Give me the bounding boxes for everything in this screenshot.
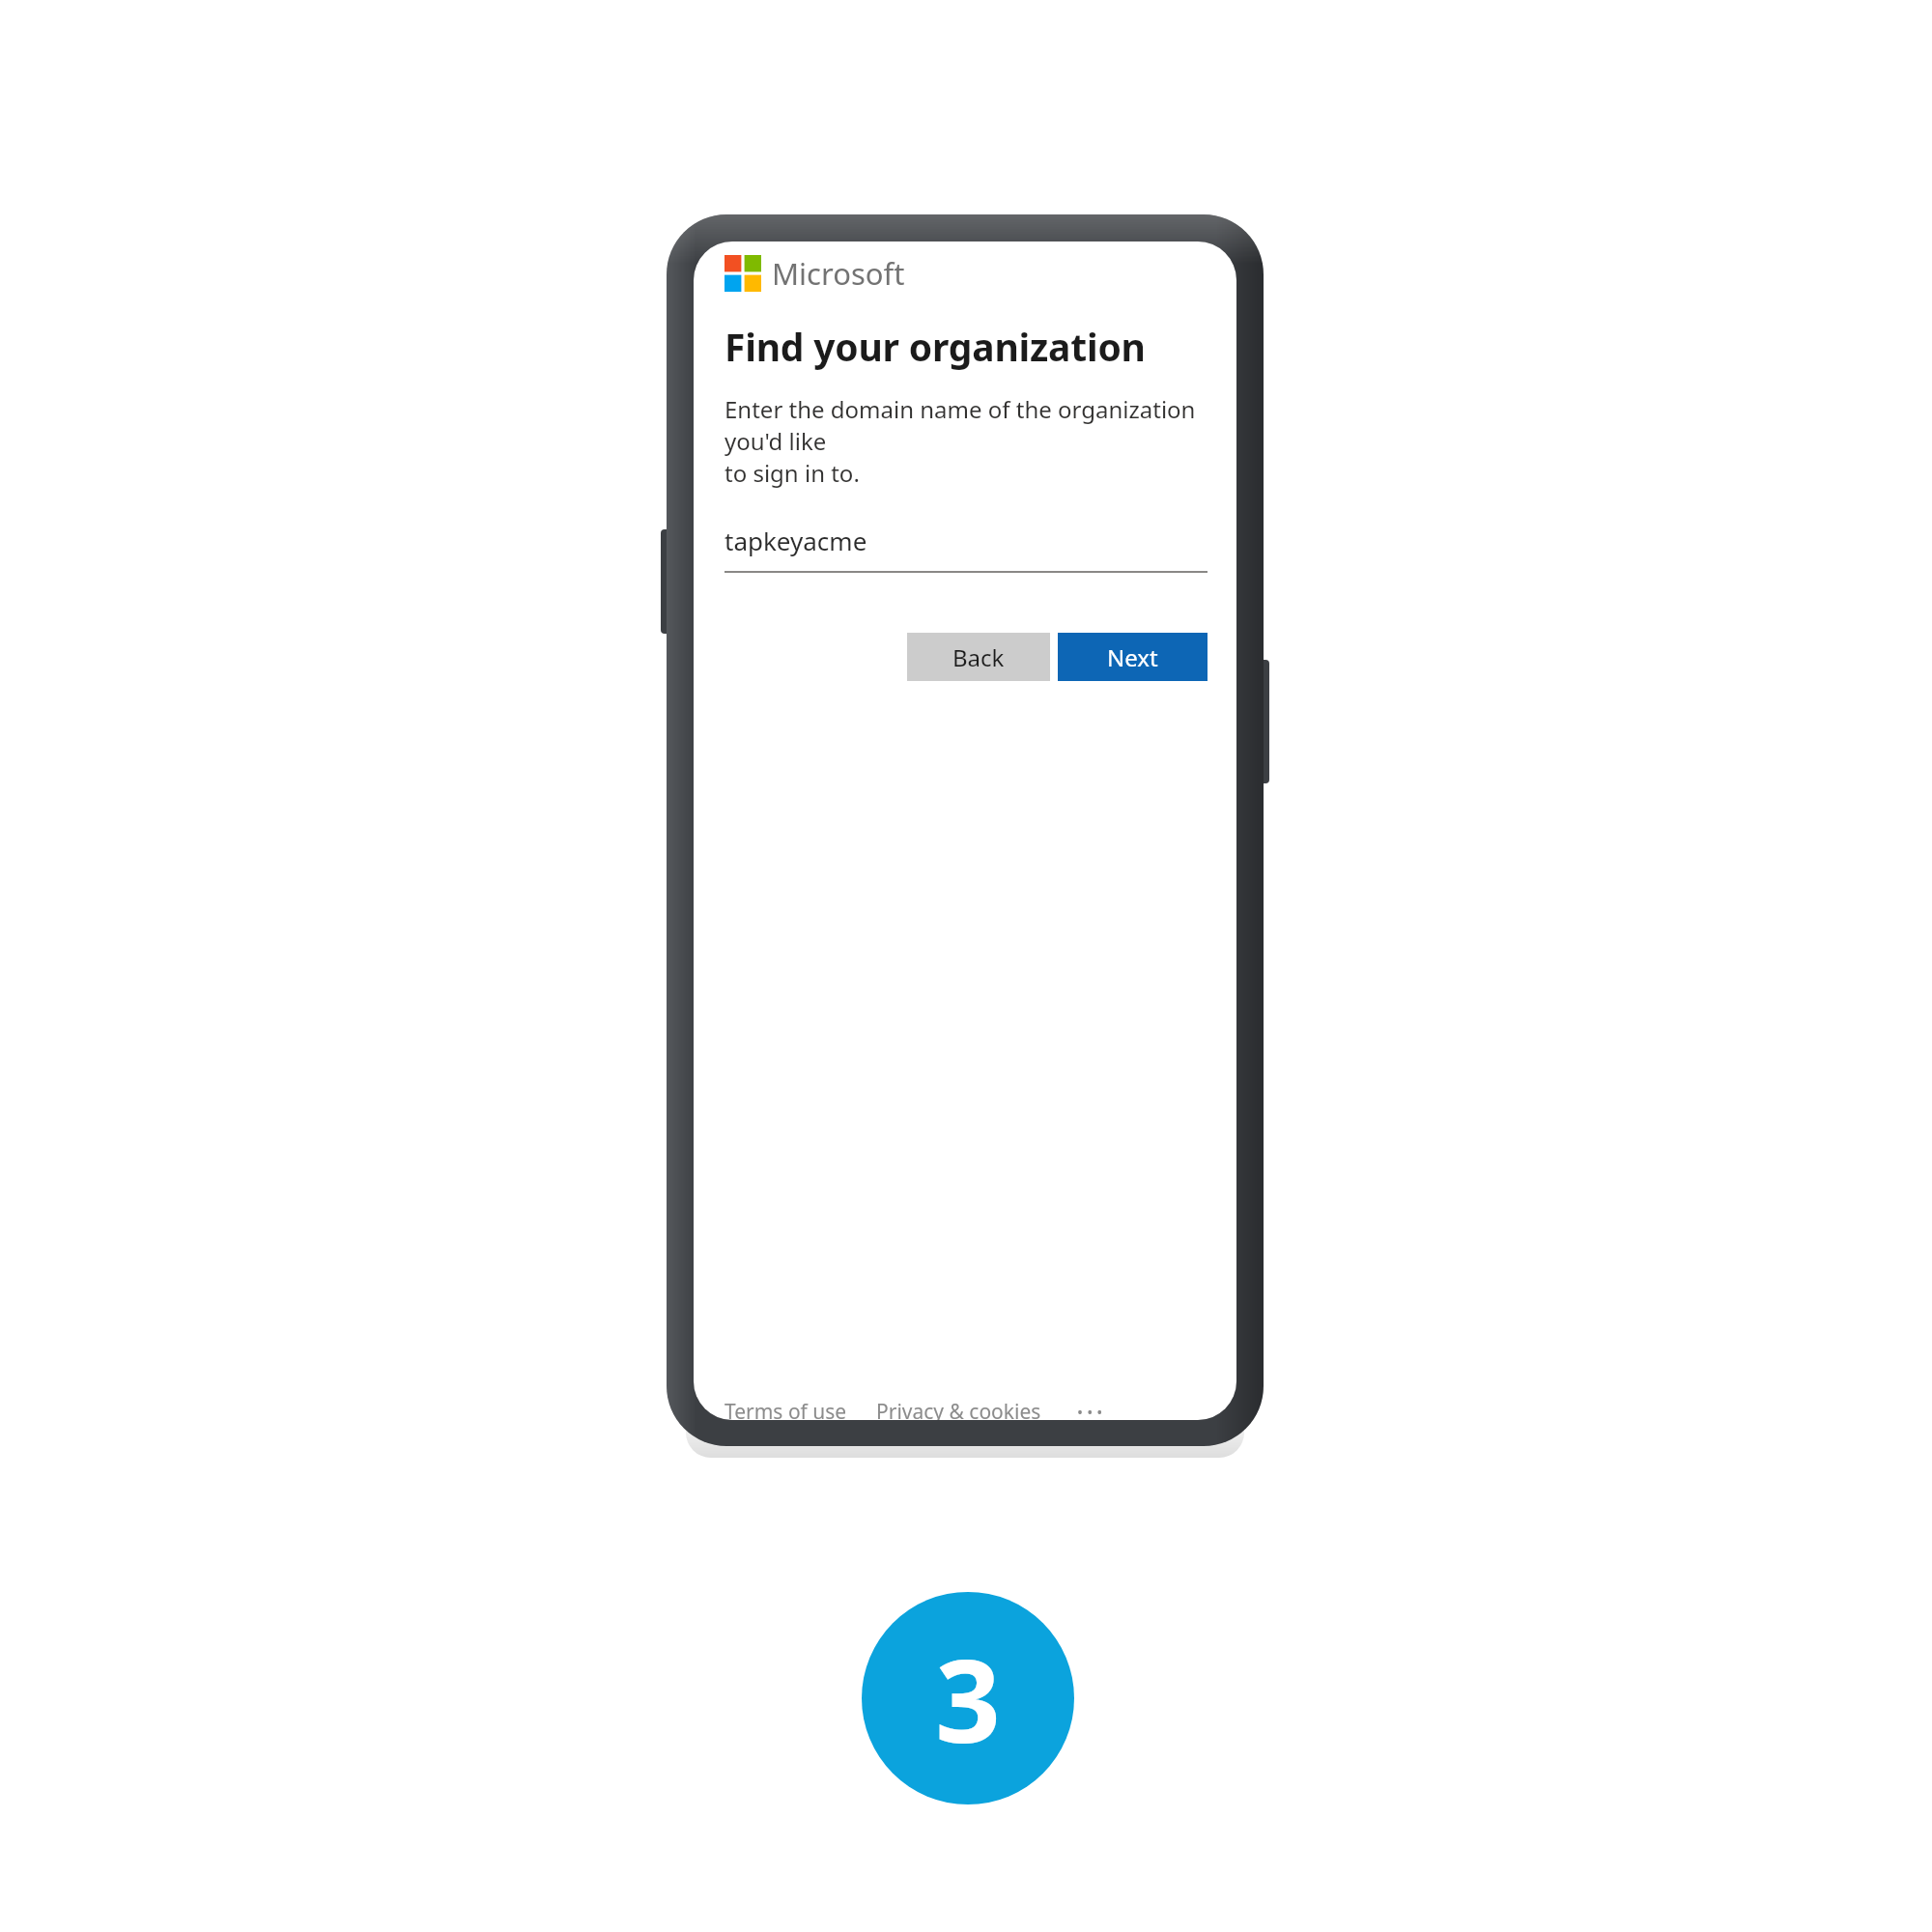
button[interactable]: Step 3	[862, 1592, 1074, 1804]
staticText: 3	[935, 1621, 1001, 1776]
staticText: Microsoft	[772, 253, 905, 294]
button[interactable]: Privacy & cookies	[876, 1398, 1041, 1420]
button[interactable]: More options	[1070, 1400, 1109, 1420]
button[interactable]: Next	[1058, 633, 1207, 681]
button[interactable]: Terms of use	[724, 1398, 847, 1420]
button[interactable]: Back	[907, 633, 1050, 681]
button[interactable]: Microsoft	[724, 253, 905, 294]
staticText: tapkeyacme	[724, 524, 867, 557]
button[interactable]: tapkeyacme	[724, 524, 1207, 573]
staticText: • • •	[1077, 1402, 1103, 1420]
staticText: Find your organization	[724, 321, 1146, 372]
staticText: Next	[1107, 641, 1158, 673]
staticText: Enter the domain name of the organizatio…	[724, 393, 1207, 489]
staticText: Back	[952, 641, 1005, 673]
